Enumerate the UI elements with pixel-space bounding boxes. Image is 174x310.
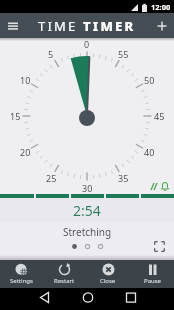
button[interactable]: Restart xyxy=(43,260,86,288)
staticText: 55 xyxy=(118,48,129,60)
staticText: 50 xyxy=(144,74,155,86)
button[interactable]: Close xyxy=(86,260,130,288)
button[interactable]: Pause xyxy=(130,260,174,288)
button[interactable] xyxy=(116,288,174,310)
staticText: TIME TIMER xyxy=(38,17,136,35)
button[interactable] xyxy=(6,19,20,33)
staticText: 30 xyxy=(82,182,93,194)
button[interactable] xyxy=(153,240,166,253)
staticText: 2:54 xyxy=(73,201,101,220)
staticText: 40 xyxy=(144,146,155,158)
staticText: 12:00 xyxy=(151,2,171,12)
button[interactable]: Settings xyxy=(0,260,43,288)
staticText: 45 xyxy=(154,110,165,122)
staticText: 15 xyxy=(10,110,21,122)
staticText: Pause xyxy=(144,277,161,285)
staticText: Settings xyxy=(10,277,33,285)
staticText: Restart xyxy=(54,277,75,285)
button[interactable] xyxy=(0,288,58,310)
button[interactable] xyxy=(155,19,169,33)
button[interactable] xyxy=(58,288,116,310)
staticText: 20 xyxy=(20,146,31,158)
staticText: 5 xyxy=(48,48,54,60)
staticText: Close xyxy=(100,277,116,285)
staticText: Stretching xyxy=(63,225,112,239)
staticText: 10 xyxy=(20,74,31,86)
staticText: 35 xyxy=(118,172,129,184)
staticText: 25 xyxy=(46,172,57,184)
staticText: 0 xyxy=(84,38,90,50)
